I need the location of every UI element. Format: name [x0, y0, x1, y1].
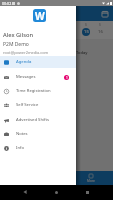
staticText: 11 — [28, 29, 33, 35]
staticText: Agenda — [16, 59, 32, 65]
staticText: 16 — [98, 29, 103, 35]
staticText: Time Registration — [16, 88, 51, 94]
button[interactable]: Recents — [83, 188, 91, 196]
staticText: 10 — [14, 29, 19, 35]
staticText: S — [85, 23, 87, 27]
staticText: Alex Gilson — [3, 31, 33, 39]
staticText: More — [87, 179, 95, 183]
button[interactable]: Info — [0, 142, 76, 154]
button[interactable]: More — [81, 174, 101, 183]
button[interactable]: F — [65, 23, 79, 36]
button[interactable]: Calendar — [101, 10, 109, 18]
button[interactable]: Home — [52, 188, 60, 196]
staticText: Self Service — [16, 102, 39, 108]
staticText: P2M Demo — [3, 41, 29, 48]
button[interactable]: Back — [21, 188, 29, 196]
button[interactable]: Advertised Shifts — [0, 114, 76, 126]
button[interactable]: S — [93, 23, 107, 36]
staticText: 1 — [66, 76, 68, 80]
staticText: 00:02 — [2, 1, 12, 6]
button[interactable]: Messages — [0, 71, 76, 83]
staticText: root@power2media.com — [3, 50, 49, 55]
staticText: S — [99, 23, 101, 27]
staticText: 15 — [84, 29, 89, 35]
staticText: Info — [16, 145, 24, 151]
button[interactable]: S — [0, 23, 9, 36]
button[interactable]: Time Registration — [0, 85, 76, 97]
staticText: Today — [76, 50, 88, 55]
button[interactable]: Notes — [0, 128, 76, 140]
button[interactable]: Self Service — [0, 99, 76, 111]
staticText: W — [35, 9, 45, 22]
button[interactable]: Agenda — [0, 56, 76, 68]
staticText: Messages — [16, 74, 36, 80]
button[interactable]: S — [79, 23, 93, 36]
button[interactable]: M — [9, 23, 23, 36]
staticText: Notes — [16, 131, 28, 137]
button[interactable]: T — [23, 23, 37, 36]
staticText: Advertised Shifts — [16, 117, 50, 123]
